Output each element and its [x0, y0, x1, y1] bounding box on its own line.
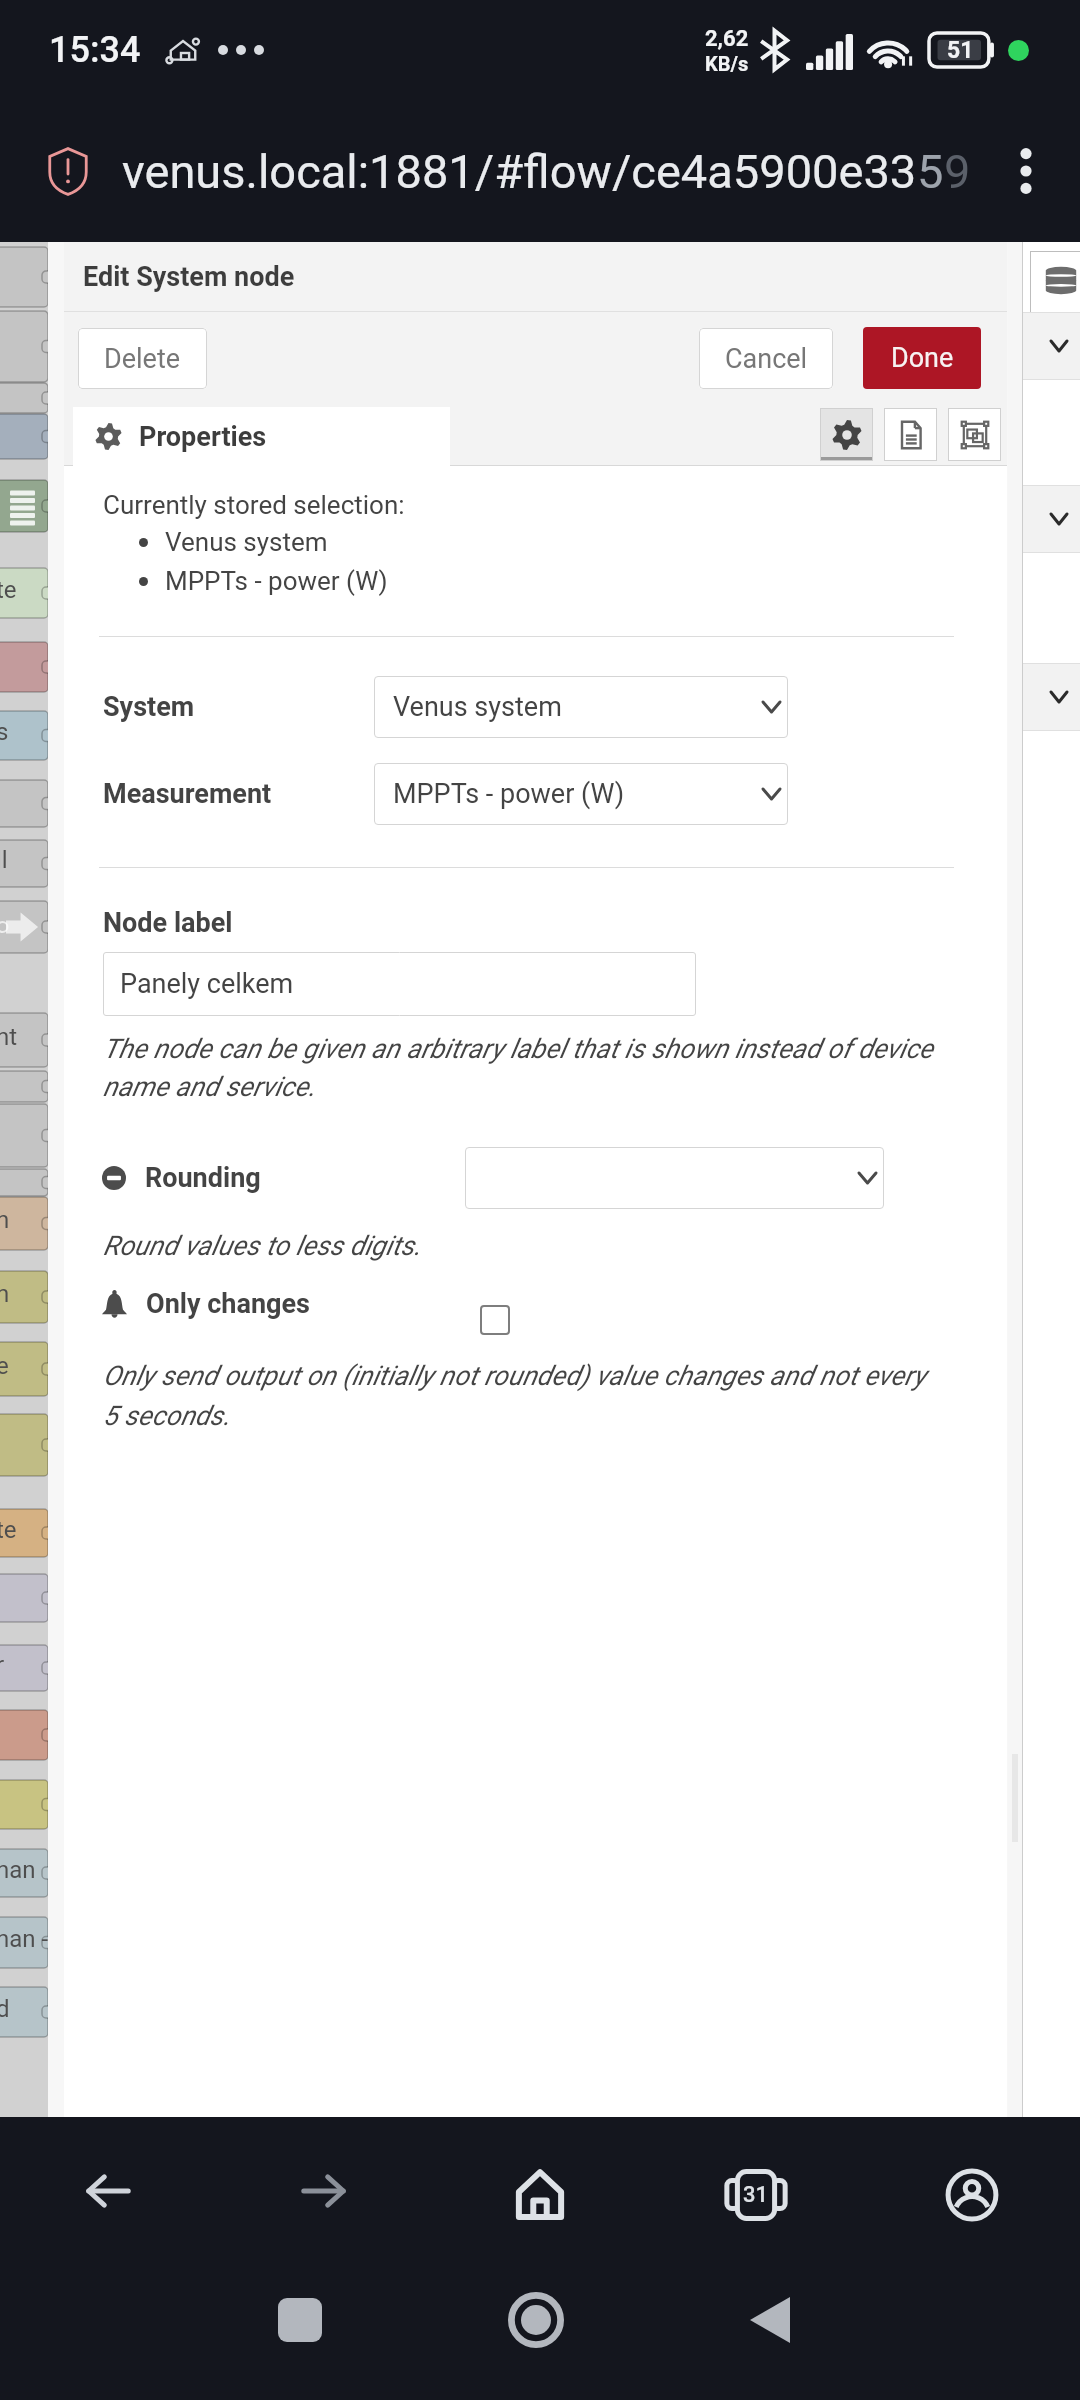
staticText: r	[0, 1651, 5, 1679]
staticText: Currently stored selection:	[103, 490, 405, 520]
button[interactable]: Cancel	[699, 328, 833, 389]
staticText: 2,62	[705, 26, 749, 52]
button[interactable]: More options	[988, 133, 1064, 209]
staticText: n	[0, 1206, 10, 1234]
staticText: MPPTs - power (W)	[393, 778, 625, 810]
staticText: Node label	[103, 907, 233, 939]
button[interactable]: Description tab	[884, 408, 937, 461]
staticText: KB/s	[705, 52, 749, 75]
staticText: Rounding	[145, 1162, 261, 1194]
button[interactable]: Forward	[216, 2117, 432, 2283]
staticText: 51	[947, 37, 974, 64]
staticText: nan	[0, 1856, 36, 1884]
staticText: te	[0, 1516, 17, 1544]
staticText: 9	[944, 144, 971, 199]
button[interactable]: Panely celkem	[103, 952, 696, 1016]
button[interactable]: Back	[722, 2272, 818, 2368]
staticText: d	[0, 1995, 10, 2023]
button[interactable]: Back	[0, 2117, 216, 2283]
staticText: Panely celkem	[120, 968, 294, 1000]
staticText: ll	[0, 846, 8, 874]
staticText: Cancel	[725, 343, 808, 375]
button[interactable]: Properties	[73, 407, 450, 466]
button[interactable]	[465, 1147, 884, 1209]
button[interactable]: Expand section	[1023, 485, 1080, 553]
button[interactable]: Expand section	[1023, 312, 1080, 380]
staticText: 31	[743, 2182, 769, 2208]
staticText: nt	[0, 1023, 18, 1051]
staticText: Edit System node	[83, 261, 295, 293]
button[interactable]: Tabs	[648, 2117, 864, 2283]
staticText: Round values to less digits.	[103, 1230, 421, 1262]
staticText: Properties	[139, 421, 267, 453]
staticText: System	[103, 691, 195, 723]
staticText: Delete	[104, 343, 181, 375]
button[interactable]: venus.local:1881/#flow/ce4a5900e33	[44, 125, 971, 217]
staticText: e	[0, 1352, 9, 1380]
staticText: Measurement	[103, 778, 272, 810]
button[interactable]: Home	[432, 2117, 648, 2283]
staticText: 15:34	[49, 29, 141, 71]
button[interactable]: Account	[864, 2117, 1080, 2283]
button[interactable]: Done	[863, 327, 981, 389]
button[interactable]: Appearance tab	[948, 408, 1001, 461]
staticText: Done	[891, 342, 954, 374]
staticText: nan -	[0, 1925, 49, 1953]
staticText: 5	[917, 144, 944, 199]
button[interactable]: Recents	[252, 2272, 348, 2368]
button[interactable]: Only changes checkbox	[480, 1305, 510, 1335]
button[interactable]: MPPTs - power (W)	[374, 763, 788, 825]
staticText: n	[0, 1280, 10, 1308]
staticText: The node can be given an arbitrary label…	[103, 1033, 941, 1103]
button[interactable]: Home	[488, 2272, 584, 2368]
button[interactable]: Properties tab	[820, 408, 873, 461]
staticText: Only changes	[146, 1288, 310, 1320]
staticText: Venus system	[393, 691, 562, 723]
button[interactable]: Expand section	[1023, 663, 1080, 731]
staticText: s	[0, 718, 9, 746]
staticText: MPPTs - power (W)	[165, 566, 388, 596]
button[interactable]: Venus system	[374, 676, 788, 738]
staticText: venus.local:1881/#flow/ce4a5900e33	[122, 144, 917, 199]
staticText: te	[0, 576, 17, 604]
staticText: Only send output on (initially not round…	[103, 1360, 941, 1431]
button[interactable]: Delete	[78, 328, 207, 389]
staticText: Venus system	[165, 527, 328, 557]
